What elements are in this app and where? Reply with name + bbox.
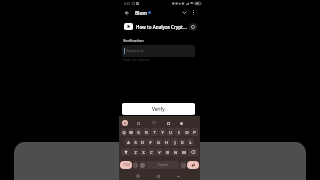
- button[interactable]: Back: [122, 8, 131, 17]
- staticText: D: [141, 140, 144, 145]
- staticText: GIF: [152, 121, 157, 125]
- button[interactable]: U: [167, 128, 174, 136]
- button[interactable]: Expand: [180, 8, 189, 17]
- button[interactable]: V: [156, 148, 163, 156]
- staticText: Q: [122, 130, 126, 135]
- button[interactable]: More: [177, 119, 185, 127]
- button[interactable]: T: [151, 128, 158, 136]
- button[interactable]: J: [171, 138, 178, 146]
- staticText: V: [158, 150, 161, 155]
- staticText: Keyword: [126, 48, 144, 54]
- button[interactable]: Copy link: [189, 23, 197, 31]
- staticText: How to Analyze Crypt…: [136, 24, 188, 30]
- button[interactable]: ?123: [120, 161, 132, 169]
- button[interactable]: B: [164, 148, 171, 156]
- staticText: A: [127, 140, 130, 145]
- button[interactable]: Back: [175, 173, 181, 179]
- button[interactable]: X: [140, 148, 147, 156]
- button[interactable]: Z: [132, 148, 139, 156]
- button[interactable]: G: [155, 138, 162, 146]
- button[interactable]: Enter: [187, 161, 199, 169]
- staticText: G: [157, 140, 160, 145]
- staticText: English: [158, 163, 169, 167]
- button[interactable]: Emoji keyboard: [139, 161, 146, 169]
- button[interactable]: E: [135, 128, 142, 136]
- button[interactable]: GIF: [150, 119, 158, 127]
- button[interactable]: O: [183, 128, 190, 136]
- button[interactable]: Home: [155, 173, 161, 179]
- staticText: S: [134, 140, 137, 145]
- button[interactable]: R: [143, 128, 150, 136]
- button[interactable]: More options: [189, 8, 198, 17]
- staticText: Y: [161, 130, 164, 135]
- button[interactable]: Backspace: [188, 148, 198, 156]
- button[interactable]: D: [139, 138, 146, 146]
- staticText: 9:41: [124, 2, 131, 6]
- button[interactable]: Clipboard: [164, 119, 172, 127]
- button[interactable]: Keyword: [122, 45, 195, 57]
- button[interactable]: W: [128, 128, 134, 136]
- button[interactable]: English: [147, 161, 179, 169]
- button[interactable]: K: [179, 138, 186, 146]
- staticText: Enter the keyword: [123, 58, 150, 62]
- button[interactable]: S: [132, 138, 138, 146]
- staticText: E: [137, 130, 140, 135]
- staticText: K: [181, 140, 184, 145]
- staticText: C: [150, 150, 153, 155]
- staticText: J: [174, 140, 176, 145]
- button[interactable]: M: [180, 148, 187, 156]
- button[interactable]: Comma: [133, 161, 138, 169]
- button[interactable]: I: [175, 128, 182, 136]
- button[interactable]: P: [191, 128, 198, 136]
- staticText: Verify: [152, 106, 165, 112]
- button[interactable]: F: [147, 138, 154, 146]
- staticText: R: [145, 130, 148, 135]
- button[interactable]: L: [187, 138, 194, 146]
- button[interactable]: Shift: [121, 148, 131, 156]
- button[interactable]: [121, 119, 129, 127]
- staticText: W: [129, 130, 133, 135]
- staticText: F: [149, 140, 152, 145]
- staticText: T: [153, 130, 156, 135]
- button[interactable]: Period: [180, 161, 186, 169]
- staticText: U: [169, 130, 172, 135]
- button[interactable]: A: [125, 138, 131, 146]
- staticText: X: [142, 150, 145, 155]
- button[interactable]: Q: [121, 128, 127, 136]
- staticText: Z: [134, 150, 137, 155]
- staticText: I: [178, 130, 180, 135]
- button[interactable]: Verify: [122, 103, 195, 115]
- button[interactable]: Y: [159, 128, 166, 136]
- staticText: Blum: [135, 10, 147, 16]
- staticText: ?123: [123, 163, 130, 167]
- staticText: P: [193, 130, 196, 135]
- button[interactable]: N: [172, 148, 179, 156]
- staticText: Verification: [123, 38, 144, 43]
- staticText: L: [189, 140, 192, 145]
- staticText: M: [182, 150, 186, 155]
- button[interactable]: C: [148, 148, 155, 156]
- staticText: B: [166, 150, 169, 155]
- staticText: O: [185, 130, 189, 135]
- button[interactable]: Recents: [135, 173, 141, 179]
- button[interactable]: Stickers: [134, 119, 142, 127]
- staticText: H: [165, 140, 168, 145]
- staticText: N: [174, 150, 177, 155]
- button[interactable]: H: [163, 138, 170, 146]
